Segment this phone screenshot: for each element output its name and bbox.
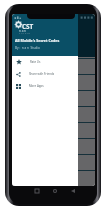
button[interactable]: Share with Friends	[12, 68, 78, 80]
button[interactable]: Rate Us	[12, 56, 78, 68]
button[interactable]: Home page	[50, 186, 59, 195]
staticText: n a n	[19, 29, 26, 33]
staticText: All Mobile's Secret Codes	[15, 38, 60, 43]
staticText: CST	[22, 22, 34, 31]
button[interactable]: Recents	[32, 186, 41, 195]
button[interactable]: Back	[68, 186, 77, 195]
button[interactable]: More Apps	[12, 80, 78, 92]
staticText: Share with Friends	[29, 72, 55, 76]
staticText: By : n a n Studio	[15, 46, 40, 50]
staticText: More Apps	[29, 84, 44, 88]
staticText: S T U D I O	[19, 32, 30, 35]
staticText: Rate Us	[30, 60, 41, 64]
